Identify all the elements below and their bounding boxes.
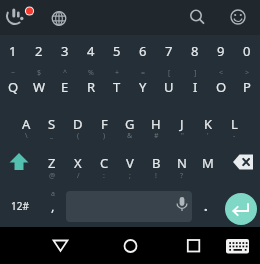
button[interactable]: G — [117, 105, 143, 143]
button[interactable]: P — [234, 67, 260, 106]
staticText: _ — [50, 131, 54, 141]
button[interactable]: R — [78, 67, 104, 106]
staticText: 5 — [113, 42, 121, 60]
staticText: ) — [103, 131, 106, 141]
button[interactable]: T — [104, 67, 130, 106]
staticText: V — [126, 154, 134, 172]
staticText: ! — [155, 171, 157, 181]
button[interactable]: 2 — [26, 35, 52, 66]
button[interactable]: F — [91, 105, 117, 143]
button[interactable]: Q — [0, 67, 26, 106]
button[interactable] — [0, 143, 39, 183]
button[interactable]: C — [91, 143, 117, 183]
staticText: [ — [168, 68, 171, 78]
button[interactable] — [221, 143, 260, 183]
button[interactable] — [87, 227, 174, 264]
button[interactable]: 12# — [0, 185, 40, 227]
staticText: # — [154, 131, 159, 141]
button[interactable]: Y — [130, 67, 156, 106]
button[interactable]: B — [143, 143, 169, 183]
button[interactable]: I — [182, 67, 208, 106]
staticText: 12# — [11, 199, 29, 213]
button[interactable]: N — [169, 143, 195, 183]
staticText: = — [141, 68, 146, 78]
button[interactable]: , — [40, 185, 66, 227]
staticText: G — [125, 115, 135, 133]
staticText: ( — [77, 131, 80, 141]
staticText: - — [233, 131, 236, 141]
button[interactable]: 7 — [156, 35, 182, 66]
button[interactable]: X — [65, 143, 91, 183]
staticText: 1 — [9, 42, 17, 60]
button[interactable]: W — [26, 67, 52, 106]
staticText: U — [164, 78, 174, 96]
button[interactable]: K — [195, 105, 221, 143]
staticText: > — [245, 68, 250, 78]
button[interactable] — [174, 227, 220, 264]
staticText: 6 — [139, 42, 147, 60]
button[interactable]: U — [156, 67, 182, 106]
staticText: B — [152, 154, 161, 172]
staticText: 0 — [243, 42, 251, 60]
button[interactable]: V — [117, 143, 143, 183]
staticText: / — [77, 171, 80, 181]
button[interactable] — [0, 227, 87, 264]
button[interactable] — [0, 0, 40, 35]
staticText: P — [243, 78, 251, 96]
button[interactable] — [180, 0, 220, 35]
staticText: . — [204, 197, 208, 215]
staticText: " — [181, 131, 184, 141]
staticText: 9 — [217, 42, 225, 60]
staticText: + — [115, 68, 120, 78]
staticText: $ — [37, 68, 42, 78]
staticText: N — [177, 154, 187, 172]
staticText: E — [61, 78, 69, 96]
staticText: & — [127, 131, 133, 141]
button[interactable]: E — [52, 67, 78, 106]
button[interactable]: . — [192, 185, 220, 227]
staticText: S — [48, 115, 56, 133]
button[interactable]: 1 — [0, 35, 26, 66]
button[interactable]: J — [169, 105, 195, 143]
staticText: W — [33, 78, 46, 96]
button[interactable]: 3 — [52, 35, 78, 66]
button[interactable]: H — [143, 105, 169, 143]
staticText: 3 — [61, 42, 69, 60]
staticText: @ — [49, 171, 56, 181]
staticText: 4 — [87, 42, 95, 60]
staticText: I — [193, 78, 198, 96]
button[interactable]: A — [13, 105, 39, 143]
button[interactable]: O — [208, 67, 234, 106]
staticText: H — [151, 115, 161, 133]
button[interactable] — [225, 193, 257, 225]
staticText: Q — [8, 78, 19, 96]
button[interactable]: 5 — [104, 35, 130, 66]
button[interactable]: L — [221, 105, 247, 143]
button[interactable] — [66, 191, 192, 222]
button[interactable]: 9 — [208, 35, 234, 66]
staticText: 7 — [165, 42, 173, 60]
staticText: ; — [129, 171, 131, 181]
staticText: A — [22, 115, 31, 133]
staticText: ~ — [11, 68, 16, 78]
staticText: T — [113, 78, 121, 96]
staticText: L — [231, 115, 238, 133]
button[interactable]: 6 — [130, 35, 156, 66]
staticText: F — [101, 115, 108, 133]
button[interactable] — [40, 0, 80, 35]
button[interactable]: Z — [39, 143, 65, 183]
button[interactable]: 0 — [234, 35, 260, 66]
button[interactable]: D — [65, 105, 91, 143]
button[interactable] — [220, 227, 260, 264]
button[interactable] — [220, 0, 260, 35]
staticText: M — [202, 154, 214, 172]
staticText: 8 — [191, 42, 199, 60]
staticText: X — [74, 154, 82, 172]
button[interactable]: M — [195, 143, 221, 183]
staticText: ^ — [63, 68, 68, 78]
button[interactable]: 4 — [78, 35, 104, 66]
staticText: D — [73, 115, 83, 133]
button[interactable]: 8 — [182, 35, 208, 66]
staticText: : — [103, 171, 105, 181]
button[interactable]: S — [39, 105, 65, 143]
